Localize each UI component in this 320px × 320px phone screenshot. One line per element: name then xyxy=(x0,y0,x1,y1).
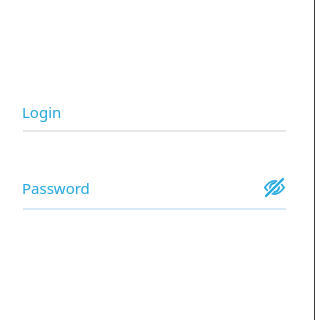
button[interactable]: Login xyxy=(22,102,286,132)
button[interactable]: Show password xyxy=(258,171,290,203)
staticText: Password xyxy=(22,178,90,198)
staticText: Login xyxy=(22,102,62,122)
button[interactable]: Password xyxy=(22,178,286,208)
